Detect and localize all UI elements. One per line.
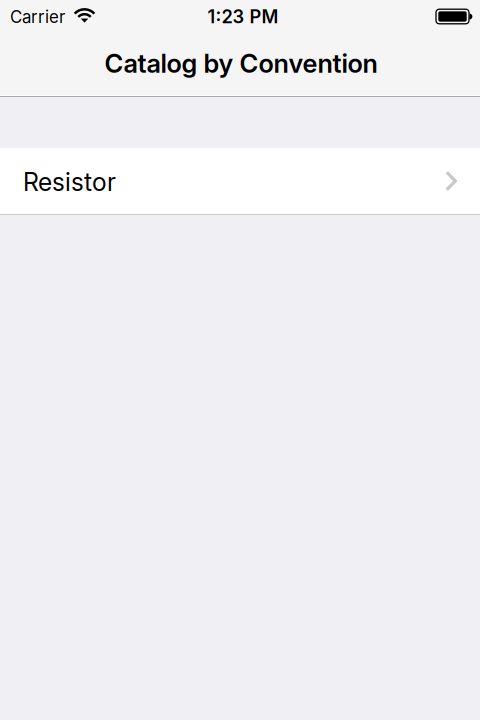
staticText: 1:23 PM	[207, 5, 278, 27]
button[interactable]: Resistor	[0, 148, 480, 215]
staticText: Catalog by Convention	[104, 48, 377, 79]
staticText: Carrier	[10, 7, 65, 27]
staticText: Resistor	[23, 167, 116, 197]
